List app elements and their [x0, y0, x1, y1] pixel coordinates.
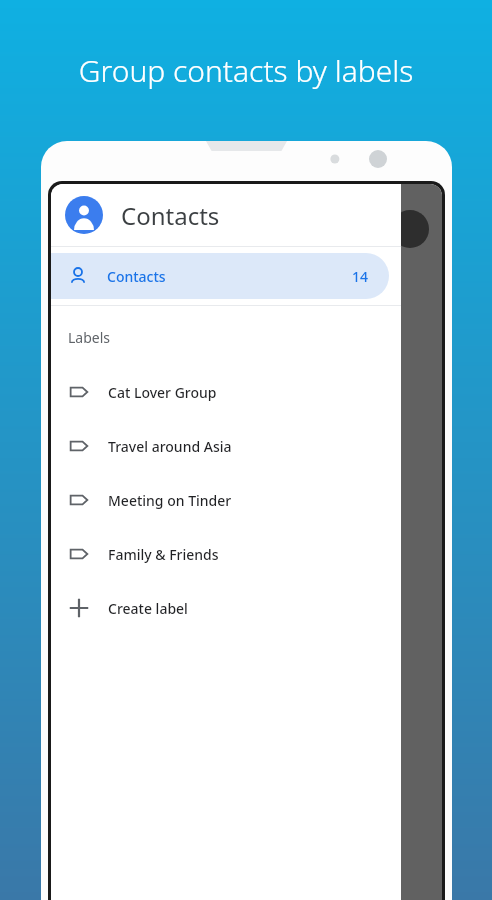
button[interactable]: Contacts — [51, 184, 401, 246]
button[interactable]: Create label — [51, 581, 401, 635]
button[interactable]: Contacts — [51, 253, 389, 299]
staticText: Contacts — [107, 267, 166, 286]
button[interactable]: Travel around Asia — [51, 419, 401, 473]
button[interactable]: Cat Lover Group — [51, 365, 401, 419]
staticText: Create label — [108, 599, 188, 618]
staticText: Group contacts by labels — [0, 50, 492, 91]
staticText: Cat Lover Group — [108, 383, 217, 402]
button[interactable]: Family & Friends — [51, 527, 401, 581]
button[interactable]: Meeting on Tinder — [51, 473, 401, 527]
staticText: Travel around Asia — [108, 437, 232, 456]
staticText: Family & Friends — [108, 545, 219, 564]
staticText: Contacts — [121, 199, 220, 232]
staticText: Labels — [68, 328, 111, 347]
staticText: 14 — [352, 267, 369, 286]
staticText: Meeting on Tinder — [108, 491, 232, 510]
